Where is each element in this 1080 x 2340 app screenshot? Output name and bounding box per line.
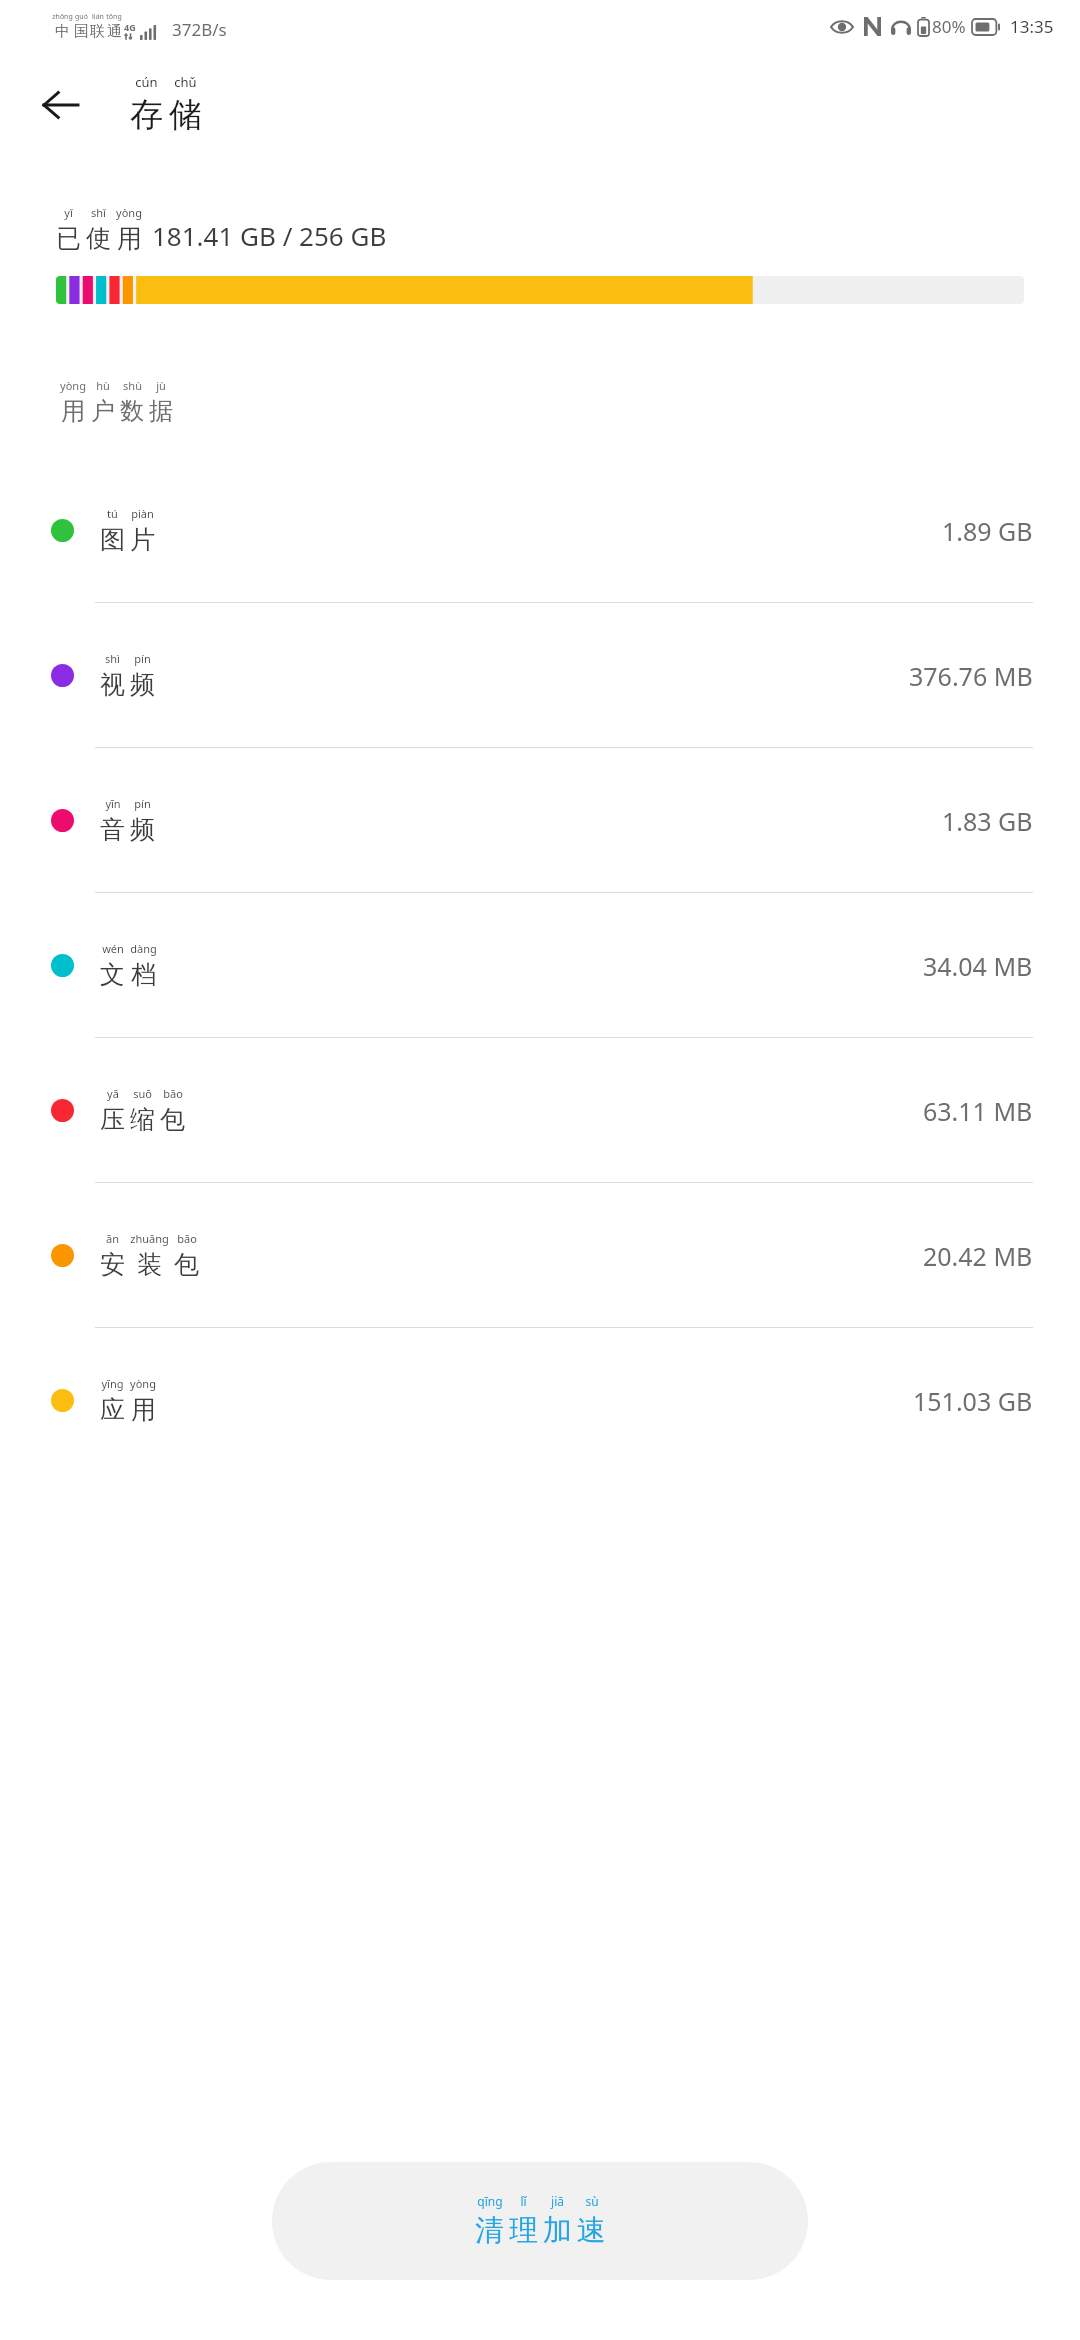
staticText: 片 bbox=[130, 524, 155, 555]
staticText: 理 bbox=[509, 2212, 538, 2249]
staticText: 包 bbox=[174, 1249, 199, 1280]
staticText: 据 bbox=[149, 396, 173, 426]
staticText: pín bbox=[134, 651, 151, 666]
staticText: zhuāng bbox=[130, 1231, 169, 1246]
staticText: 中 bbox=[55, 22, 70, 41]
staticText: 音 bbox=[100, 814, 125, 845]
staticText: 图 bbox=[100, 524, 125, 555]
staticText: guó bbox=[75, 12, 88, 22]
staticText: sù bbox=[585, 2193, 599, 2209]
staticText: 装 bbox=[137, 1249, 162, 1280]
staticText: 用 bbox=[117, 223, 142, 254]
button[interactable]: wén bbox=[0, 893, 1080, 1038]
button[interactable]: yīn bbox=[0, 748, 1080, 893]
staticText: 应 bbox=[100, 1394, 125, 1425]
button[interactable]: yā bbox=[0, 1038, 1080, 1183]
staticText: jiā bbox=[551, 2193, 564, 2209]
staticText: 缩 bbox=[130, 1104, 155, 1135]
staticText: 13:35 bbox=[1010, 15, 1054, 38]
button[interactable]: ān bbox=[0, 1183, 1080, 1328]
button[interactable]: shì bbox=[0, 603, 1080, 748]
staticText: 档 bbox=[131, 959, 156, 990]
staticText: lǐ bbox=[520, 2193, 527, 2209]
staticText: 加 bbox=[543, 2212, 572, 2249]
button[interactable]: qīng bbox=[272, 2162, 808, 2280]
staticText: ān bbox=[106, 1231, 119, 1246]
staticText: 速 bbox=[577, 2212, 606, 2249]
staticText: 存 bbox=[130, 94, 163, 136]
staticText: yā bbox=[107, 1086, 119, 1101]
button[interactable]: yīng bbox=[0, 1328, 1080, 1473]
staticText: bāo bbox=[163, 1086, 183, 1101]
staticText: 联 bbox=[90, 22, 105, 41]
staticText: cún bbox=[135, 73, 158, 91]
staticText: 户 bbox=[91, 396, 115, 426]
staticText: 已 bbox=[56, 223, 81, 254]
button[interactable]: Back bbox=[30, 74, 92, 136]
staticText: shì bbox=[105, 651, 120, 666]
staticText: tú bbox=[107, 506, 118, 521]
staticText: 通 bbox=[107, 22, 122, 41]
staticText: 包 bbox=[160, 1104, 185, 1135]
staticText: 文 bbox=[100, 959, 125, 990]
staticText: yòng bbox=[116, 205, 142, 220]
staticText: shǐ bbox=[91, 205, 106, 220]
staticText: 20.42 MB bbox=[923, 1239, 1033, 1273]
staticText: piàn bbox=[131, 506, 154, 521]
staticText: 181.41 GB / 256 GB bbox=[152, 218, 387, 253]
staticText: 63.11 MB bbox=[923, 1094, 1033, 1128]
staticText: lián bbox=[92, 12, 104, 22]
staticText: 视 bbox=[100, 669, 125, 700]
staticText: 频 bbox=[130, 669, 155, 700]
staticText: yīn bbox=[105, 796, 121, 811]
staticText: 34.04 MB bbox=[923, 949, 1033, 983]
staticText: 清 bbox=[475, 2212, 504, 2249]
staticText: 1.83 GB bbox=[942, 804, 1033, 838]
staticText: 用 bbox=[61, 396, 85, 426]
staticText: dàng bbox=[130, 941, 157, 956]
staticText: yǐ bbox=[64, 205, 73, 220]
staticText: shù bbox=[123, 378, 142, 393]
staticText: 4G bbox=[124, 21, 136, 33]
staticText: yīng bbox=[101, 1376, 124, 1391]
staticText: 安 bbox=[100, 1249, 125, 1280]
staticText: jù bbox=[156, 378, 166, 393]
staticText: tōng bbox=[106, 12, 122, 22]
button[interactable]: tú bbox=[0, 458, 1080, 603]
staticText: pín bbox=[134, 796, 151, 811]
staticText: yòng bbox=[60, 378, 86, 393]
staticText: 频 bbox=[130, 814, 155, 845]
staticText: 压 bbox=[100, 1104, 125, 1135]
staticText: 1.89 GB bbox=[942, 514, 1033, 548]
staticText: 151.03 GB bbox=[913, 1384, 1033, 1418]
staticText: 80% bbox=[932, 15, 966, 38]
staticText: hù bbox=[96, 378, 110, 393]
staticText: yòng bbox=[130, 1376, 156, 1391]
staticText: zhōng bbox=[52, 12, 73, 22]
staticText: 376.76 MB bbox=[909, 659, 1033, 693]
staticText: 使 bbox=[86, 223, 111, 254]
staticText: 372B/s bbox=[172, 18, 227, 41]
staticText: wén bbox=[102, 941, 124, 956]
staticText: bāo bbox=[177, 1231, 197, 1246]
staticText: chǔ bbox=[174, 73, 197, 91]
staticText: suō bbox=[133, 1086, 152, 1101]
staticText: 储 bbox=[169, 94, 202, 136]
staticText: qīng bbox=[477, 2193, 503, 2209]
staticText: 数 bbox=[120, 396, 144, 426]
staticText: 用 bbox=[131, 1394, 156, 1425]
staticText: 国 bbox=[74, 22, 89, 41]
